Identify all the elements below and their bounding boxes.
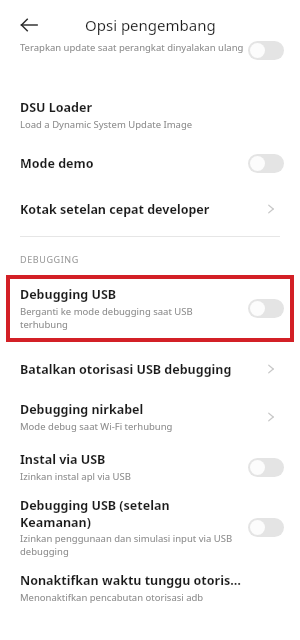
staticText: Kotak setelan cepat developer xyxy=(20,201,210,218)
button[interactable]: Batalkan otorisasi USB debugging xyxy=(0,354,300,384)
staticText: Batalkan otorisasi USB debugging xyxy=(20,361,232,378)
staticText: Nonaktifkan waktu tunggu otoris… xyxy=(20,572,241,589)
staticText: Izinkan instal apl via USB xyxy=(20,470,131,483)
staticText: DSU Loader xyxy=(20,99,92,116)
button[interactable]: Toggle xyxy=(248,299,284,318)
staticText: Mode demo xyxy=(20,155,94,172)
staticText: Berganti ke mode debugging saat USB terh… xyxy=(20,305,240,331)
button[interactable]: DSU Loader xyxy=(0,94,300,136)
staticText: Debugging USB xyxy=(20,286,117,303)
staticText: DEBUGGING xyxy=(20,253,79,265)
button[interactable]: Toggle xyxy=(248,41,284,60)
staticText: Debugging USB (setelan Keamanan) xyxy=(20,497,240,530)
button[interactable]: Mode demo xyxy=(0,146,300,180)
staticText: Load a Dynamic System Update Image xyxy=(20,118,193,131)
button[interactable]: Nonaktifkan waktu tunggu otoris… xyxy=(0,568,300,608)
button[interactable]: Toggle xyxy=(248,154,284,173)
button[interactable]: Debugging USB (setelan Keamanan) xyxy=(0,496,300,558)
button[interactable]: Toggle xyxy=(248,458,284,477)
staticText: Menonaktifkan pencabutan otorisasi adb xyxy=(20,591,204,604)
staticText: Mode debug saat Wi-Fi terhubung xyxy=(20,420,173,433)
button[interactable]: Back xyxy=(12,8,46,42)
staticText: Izinkan penggunaan dan simulasi input vi… xyxy=(20,532,240,558)
staticText: Debugging nirkabel xyxy=(20,401,144,418)
staticText: Terapkan update saat perangkat dinyalaka… xyxy=(20,41,244,54)
button[interactable]: Kotak setelan cepat developer xyxy=(0,192,300,226)
button[interactable]: Debugging USB xyxy=(6,275,294,342)
button[interactable]: Instal via USB xyxy=(0,446,300,488)
staticText: Opsi pengembang xyxy=(85,15,216,35)
button[interactable]: Toggle xyxy=(248,518,284,537)
staticText: Instal via USB xyxy=(20,451,106,468)
button[interactable]: Debugging nirkabel xyxy=(0,396,300,438)
